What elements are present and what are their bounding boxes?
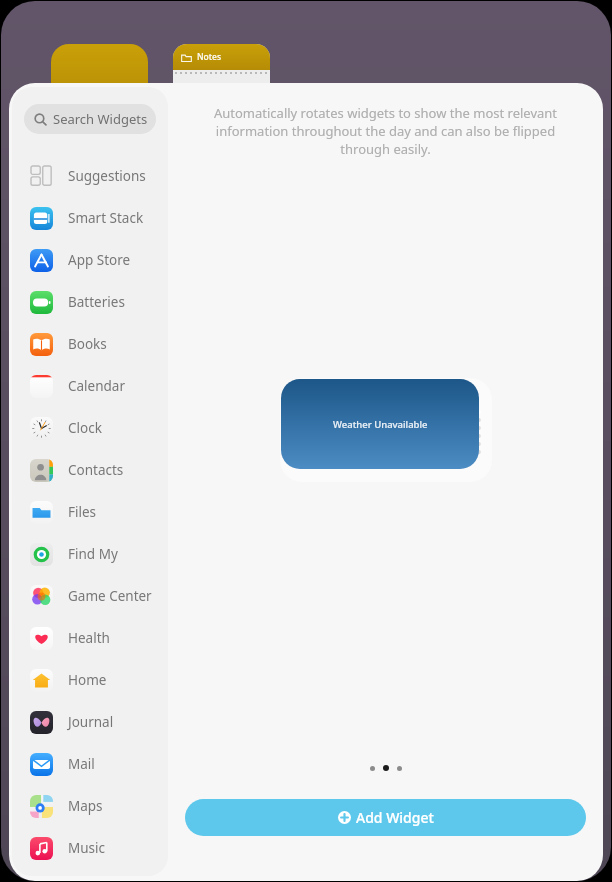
other: Contacts xyxy=(30,459,53,482)
other: Home xyxy=(30,669,53,692)
staticText: Weather Unavailable xyxy=(333,418,428,431)
staticText: Contacts xyxy=(68,461,124,479)
button[interactable]: Batteries xyxy=(12,281,168,323)
staticText: Mail xyxy=(68,755,95,773)
button[interactable]: Music xyxy=(12,827,168,869)
button[interactable]: Contacts xyxy=(12,449,168,491)
button[interactable]: Smart Stack xyxy=(12,197,168,239)
button[interactable]: Game Center xyxy=(12,575,168,617)
staticText: Game Center xyxy=(68,587,152,605)
other: Find My xyxy=(30,543,53,566)
other: Journal xyxy=(30,711,53,734)
button[interactable]: Journal xyxy=(12,701,168,743)
other: Health xyxy=(30,627,53,650)
staticText: Add Widget xyxy=(356,808,434,827)
staticText: Journal xyxy=(68,713,114,731)
button[interactable]: Health xyxy=(12,617,168,659)
other: Mail xyxy=(30,753,53,776)
button[interactable]: Weather Unavailable xyxy=(281,379,479,469)
staticText: Smart Stack xyxy=(68,209,144,227)
staticText: Books xyxy=(68,335,107,353)
staticText: Calendar xyxy=(68,377,125,395)
button[interactable]: Add Widget xyxy=(185,799,586,836)
button[interactable]: Search Widgets xyxy=(24,104,156,134)
button[interactable]: Maps xyxy=(12,785,168,827)
staticText: Notes xyxy=(197,51,222,63)
button[interactable]: Find My xyxy=(12,533,168,575)
other: Maps xyxy=(30,795,53,818)
other: Music xyxy=(30,837,53,860)
button[interactable]: Books xyxy=(12,323,168,365)
staticText: Suggestions xyxy=(68,167,146,185)
button[interactable]: Mail xyxy=(12,743,168,785)
other: App Store xyxy=(30,249,53,272)
button[interactable]: App Store xyxy=(12,239,168,281)
staticText: Music xyxy=(68,839,106,857)
other: Smart Stack xyxy=(30,207,53,230)
staticText: Health xyxy=(68,629,110,647)
other: Batteries xyxy=(30,291,53,314)
button[interactable]: Home xyxy=(12,659,168,701)
other: Calendar xyxy=(30,375,53,398)
other: Clock xyxy=(30,417,53,440)
staticText: Search Widgets xyxy=(53,110,148,128)
other: Game Center xyxy=(30,585,53,608)
staticText: Files xyxy=(68,503,97,521)
staticText: Automatically rotates widgets to show th… xyxy=(190,104,581,158)
other: Books xyxy=(30,333,53,356)
button[interactable]: Calendar xyxy=(12,365,168,407)
staticText: Batteries xyxy=(68,293,125,311)
button[interactable]: Clock xyxy=(12,407,168,449)
button[interactable]: Suggestions xyxy=(12,155,168,197)
staticText: App Store xyxy=(68,251,131,269)
button[interactable]: Files xyxy=(12,491,168,533)
other: Files xyxy=(30,501,53,524)
staticText: Find My xyxy=(68,545,118,563)
other: Suggestions xyxy=(31,166,52,187)
staticText: Maps xyxy=(68,797,103,815)
staticText: Clock xyxy=(68,419,102,437)
staticText: Home xyxy=(68,671,107,689)
